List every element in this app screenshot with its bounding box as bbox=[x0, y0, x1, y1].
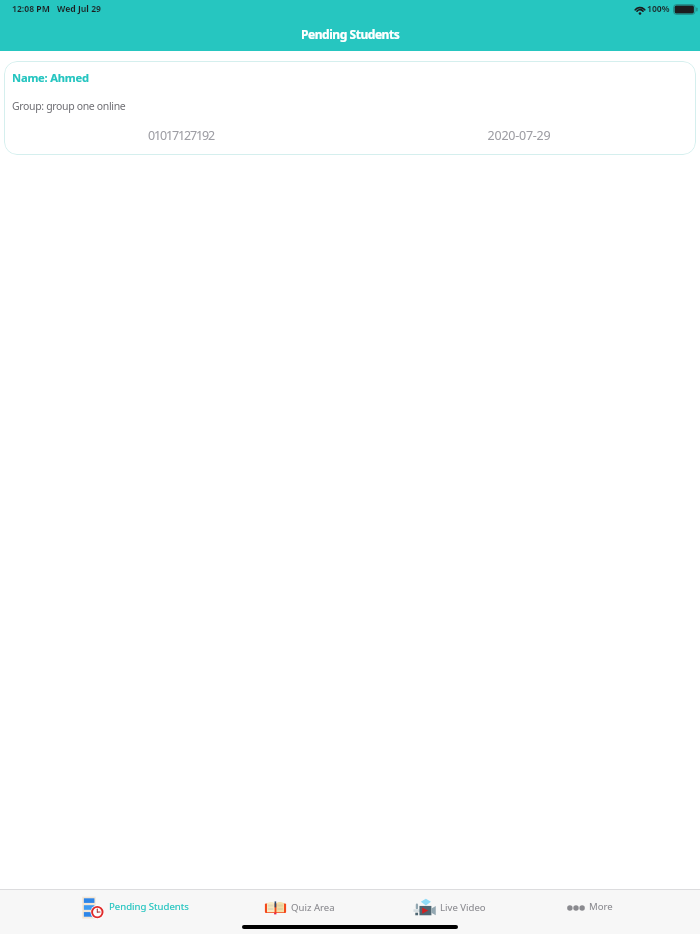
staticText: 2020-07-29 bbox=[350, 127, 688, 144]
other: Live Video bbox=[413, 895, 436, 921]
staticText: 12:08 PM bbox=[12, 3, 50, 15]
other: Quiz Area bbox=[264, 897, 287, 919]
staticText: Wed Jul 29 bbox=[57, 3, 101, 15]
button[interactable]: Live Video bbox=[350, 890, 525, 925]
staticText: Live Video bbox=[440, 901, 486, 914]
staticText: Quiz Area bbox=[291, 901, 335, 914]
staticText: Pending Students bbox=[109, 900, 189, 913]
staticText: Name: Ahmed bbox=[12, 70, 89, 85]
staticText: More bbox=[589, 900, 613, 913]
other: More bbox=[567, 904, 585, 912]
staticText: 100% bbox=[647, 3, 670, 15]
staticText: Group: group one online bbox=[12, 99, 126, 113]
other: Pending Students bbox=[81, 896, 105, 919]
staticText: Pending Students bbox=[301, 26, 400, 42]
staticText: 01017127192 bbox=[12, 127, 350, 144]
button[interactable]: Quiz Area bbox=[175, 890, 350, 925]
button[interactable]: Name: Ahmed bbox=[4, 61, 696, 155]
button[interactable]: Pending Students bbox=[0, 890, 175, 925]
button[interactable]: More bbox=[525, 890, 700, 925]
